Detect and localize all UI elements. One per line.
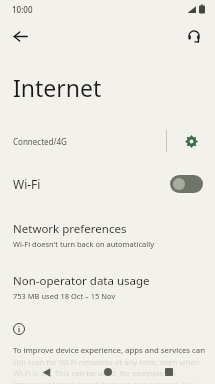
button[interactable]: Back [4, 20, 36, 52]
button[interactable]: Back [31, 360, 61, 384]
staticText: Wi-Fi [13, 176, 170, 192]
button[interactable]: Mobile network settings [167, 125, 215, 157]
button[interactable]: Non-operator data usage [0, 271, 215, 303]
button[interactable]: Help and support [178, 20, 210, 52]
staticText: 753 MB used 18 Oct – 15 Nov [13, 291, 116, 301]
button[interactable]: Network preferences [0, 219, 215, 251]
button[interactable]: Wi-Fi [0, 165, 215, 203]
staticText: Network preferences [13, 221, 127, 237]
staticText: Internet [13, 72, 102, 103]
button[interactable]: Recent apps [154, 360, 184, 384]
staticText: To improve device experience, apps and s… [13, 345, 205, 384]
button[interactable]: Connected/4G [0, 125, 166, 157]
staticText: Non-operator data usage [13, 273, 150, 289]
button[interactable]: Home [93, 360, 123, 384]
staticText: Wi-Fi doesn't turn back on automatically [13, 239, 154, 249]
staticText: Connected/4G [13, 136, 67, 147]
staticText: 10:00 [12, 4, 33, 15]
